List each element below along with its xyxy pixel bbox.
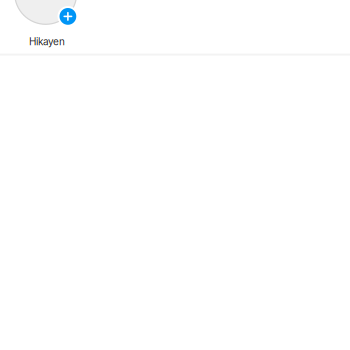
button[interactable]: Your story [14, 0, 78, 48]
staticText: Hikayen [29, 35, 65, 48]
